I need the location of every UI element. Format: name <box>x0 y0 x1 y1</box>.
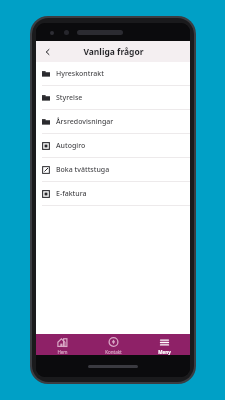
other: Kontakt <box>108 337 119 348</box>
button[interactable]: Hyreskontrakt <box>36 62 190 85</box>
button[interactable]: Autogiro <box>36 134 190 157</box>
staticText: Årsredovisningar <box>56 117 114 127</box>
other: Meny <box>159 337 170 348</box>
button[interactable]: Boka tvättstuga <box>36 158 190 181</box>
button[interactable]: Kontakt <box>88 334 139 355</box>
staticText: Meny <box>158 349 171 355</box>
staticText: Hem <box>57 349 68 355</box>
staticText: Boka tvättstuga <box>56 165 110 175</box>
other: Hem <box>57 337 68 348</box>
button[interactable]: Hem <box>36 334 88 355</box>
staticText: Styrelse <box>56 93 83 103</box>
staticText: Vanliga frågor <box>83 46 144 58</box>
button[interactable]: Back <box>38 42 58 62</box>
button[interactable]: Årsredovisningar <box>36 110 190 133</box>
button[interactable]: E-faktura <box>36 182 190 205</box>
button[interactable]: Meny <box>139 334 190 355</box>
button[interactable]: Styrelse <box>36 86 190 109</box>
staticText: Hyreskontrakt <box>56 69 104 79</box>
staticText: E-faktura <box>56 189 87 199</box>
staticText: Autogiro <box>56 141 86 151</box>
staticText: Kontakt <box>105 349 122 355</box>
